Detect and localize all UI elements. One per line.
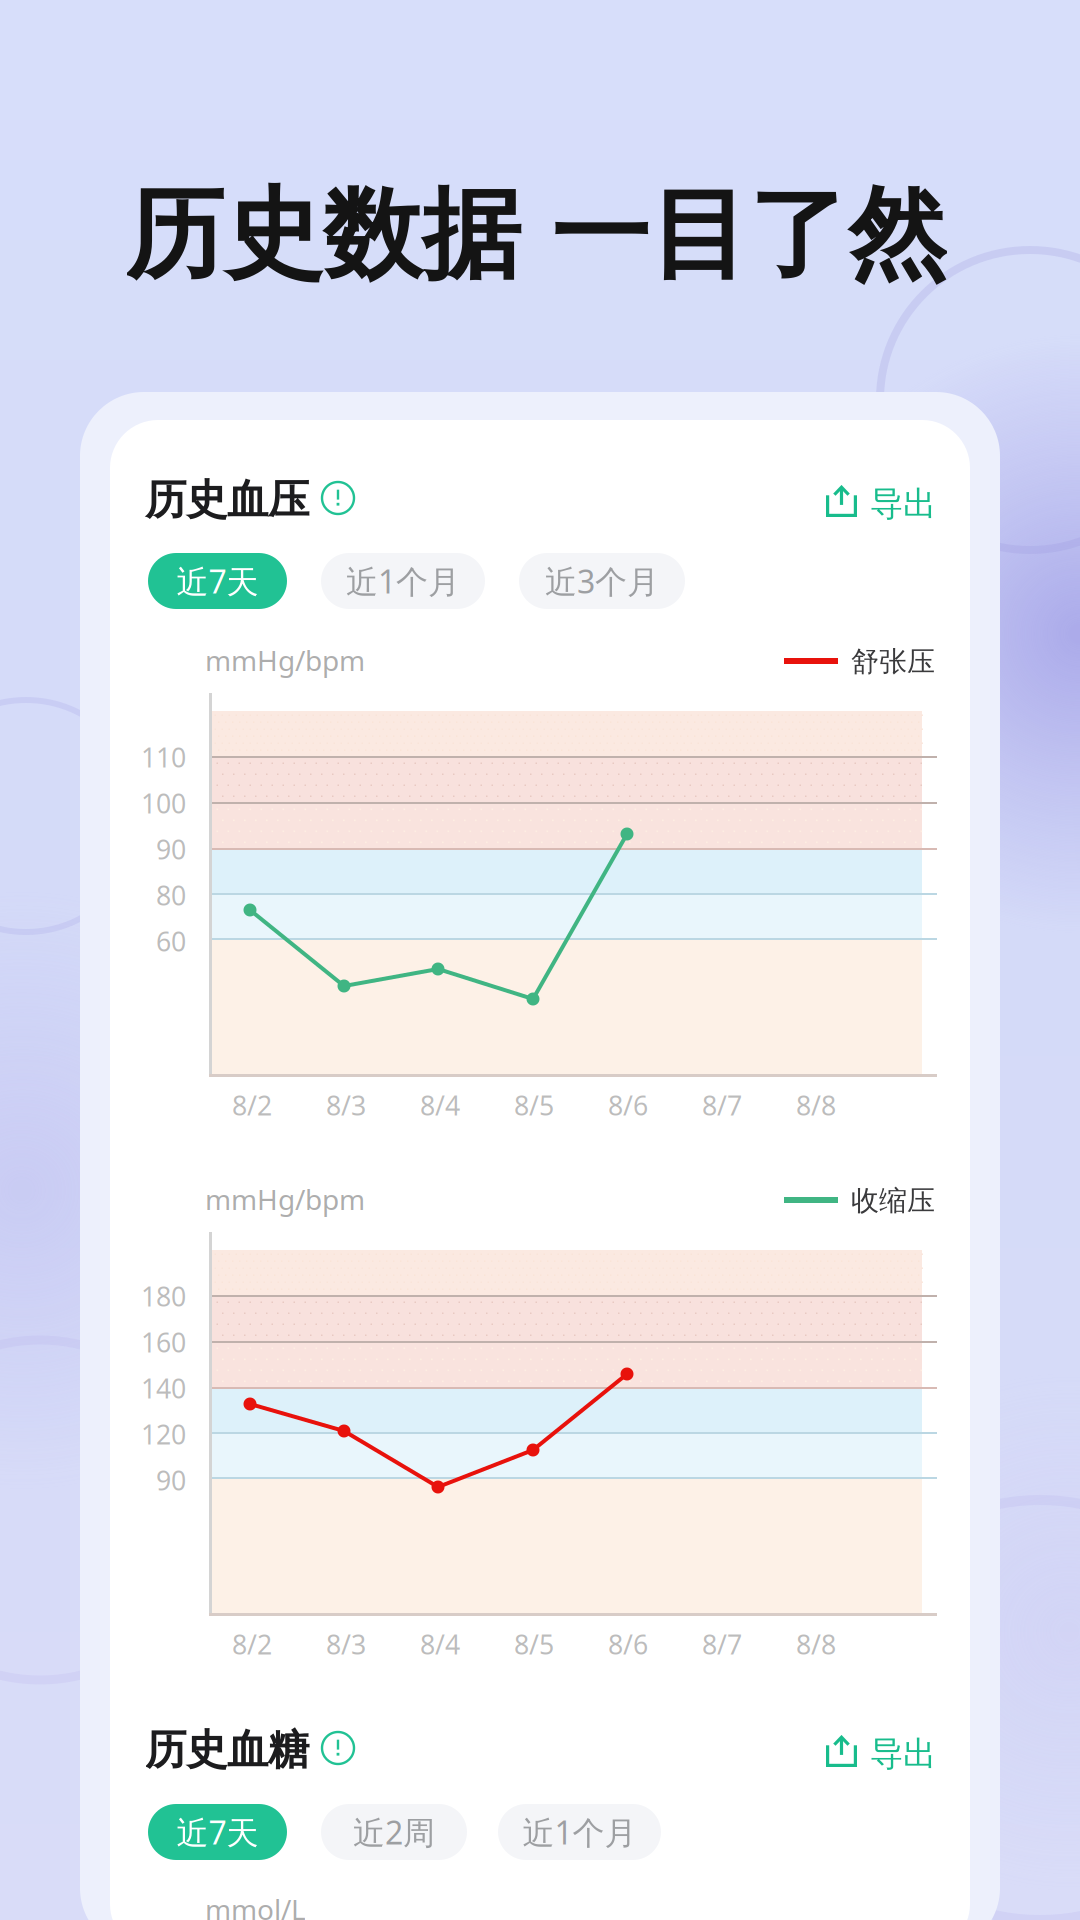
staticText: mmHg/bpm bbox=[205, 641, 365, 679]
staticText: 8/4 bbox=[420, 1087, 460, 1123]
staticText: 近1个月 bbox=[346, 559, 460, 603]
button[interactable]: 说明 bbox=[322, 482, 354, 514]
staticText: 舒张压 bbox=[851, 644, 935, 679]
staticText: 近7天 bbox=[176, 559, 258, 603]
staticText: 导出 bbox=[870, 483, 936, 525]
staticText: 8/7 bbox=[702, 1626, 742, 1662]
staticText: 160 bbox=[141, 1324, 186, 1360]
staticText: 近1个月 bbox=[522, 1810, 636, 1854]
button[interactable]: 导出 bbox=[826, 483, 940, 521]
staticText: 8/7 bbox=[702, 1087, 742, 1123]
staticText: 历史血压 bbox=[145, 474, 309, 526]
staticText: 8/3 bbox=[326, 1087, 366, 1123]
staticText: 8/8 bbox=[796, 1626, 836, 1662]
staticText: 导出 bbox=[870, 1733, 936, 1775]
button[interactable]: 近7天 bbox=[148, 553, 287, 609]
staticText: 8/6 bbox=[608, 1626, 648, 1662]
button[interactable]: 近1个月 bbox=[498, 1804, 661, 1860]
staticText: 8/8 bbox=[796, 1087, 836, 1123]
button[interactable]: 近1个月 bbox=[321, 553, 485, 609]
staticText: 8/2 bbox=[232, 1626, 272, 1662]
staticText: 80 bbox=[156, 877, 186, 913]
staticText: 8/2 bbox=[232, 1087, 272, 1123]
staticText: 110 bbox=[141, 739, 186, 775]
staticText: 8/4 bbox=[420, 1626, 460, 1662]
staticText: 120 bbox=[141, 1416, 186, 1452]
staticText: 近7天 bbox=[176, 1810, 258, 1854]
staticText: 60 bbox=[156, 923, 186, 959]
staticText: 近2周 bbox=[353, 1810, 435, 1854]
staticText: 90 bbox=[156, 1462, 186, 1498]
button[interactable]: 说明 bbox=[322, 1732, 354, 1764]
staticText: mmol/L bbox=[205, 1890, 306, 1920]
staticText: 8/5 bbox=[514, 1626, 554, 1662]
staticText: 100 bbox=[141, 785, 186, 821]
staticText: 180 bbox=[141, 1278, 186, 1314]
button[interactable]: 近7天 bbox=[148, 1804, 287, 1860]
staticText: mmHg/bpm bbox=[205, 1180, 365, 1218]
staticText: 近3个月 bbox=[545, 559, 659, 603]
button[interactable]: 近2周 bbox=[321, 1804, 467, 1860]
staticText: 8/5 bbox=[514, 1087, 554, 1123]
staticText: 历史血糖 bbox=[145, 1724, 309, 1776]
button[interactable]: 导出 bbox=[826, 1733, 940, 1771]
staticText: 8/3 bbox=[326, 1626, 366, 1662]
button[interactable]: 近3个月 bbox=[519, 553, 685, 609]
staticText: 收缩压 bbox=[851, 1183, 935, 1218]
staticText: 140 bbox=[141, 1370, 186, 1406]
staticText: 90 bbox=[156, 831, 186, 867]
staticText: 历史数据 一目了然 bbox=[125, 173, 947, 297]
staticText: 8/6 bbox=[608, 1087, 648, 1123]
